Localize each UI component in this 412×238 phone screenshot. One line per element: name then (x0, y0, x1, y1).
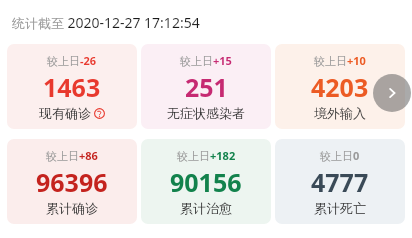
button[interactable]: 较上日+15 (141, 44, 271, 129)
staticText: 累计确诊 (46, 200, 98, 216)
button[interactable]: More imported cases (373, 74, 411, 112)
button[interactable]: 较上日+86 (7, 139, 137, 224)
staticText: 较上日+10 (314, 53, 366, 68)
staticText: 较上日+15 (180, 53, 232, 68)
button[interactable]: 较上日+10 (275, 44, 405, 129)
staticText: 251 (185, 70, 228, 104)
staticText: 累计治愈 (180, 200, 232, 216)
staticText: 4203 (311, 70, 369, 104)
staticText: 无症状感染者 (167, 105, 245, 121)
staticText: 90156 (170, 165, 242, 199)
staticText: 较上日0 (320, 148, 360, 163)
button[interactable]: 较上日+182 (141, 139, 271, 224)
staticText: 4777 (311, 165, 369, 199)
staticText: 较上日-26 (47, 53, 97, 68)
staticText: 较上日+86 (46, 148, 98, 163)
button[interactable]: 较上日0 (275, 139, 405, 224)
staticText: 现有确诊 (39, 105, 91, 121)
staticText: 统计截至 2020-12-27 17:12:54 (12, 13, 200, 32)
staticText: 96396 (36, 165, 108, 199)
staticText: 较上日+182 (177, 148, 236, 163)
staticText: 境外输入 (314, 105, 366, 121)
staticText: 1463 (43, 70, 101, 104)
button[interactable]: 较上日-26 (7, 44, 137, 129)
staticText: 累计死亡 (314, 200, 366, 216)
